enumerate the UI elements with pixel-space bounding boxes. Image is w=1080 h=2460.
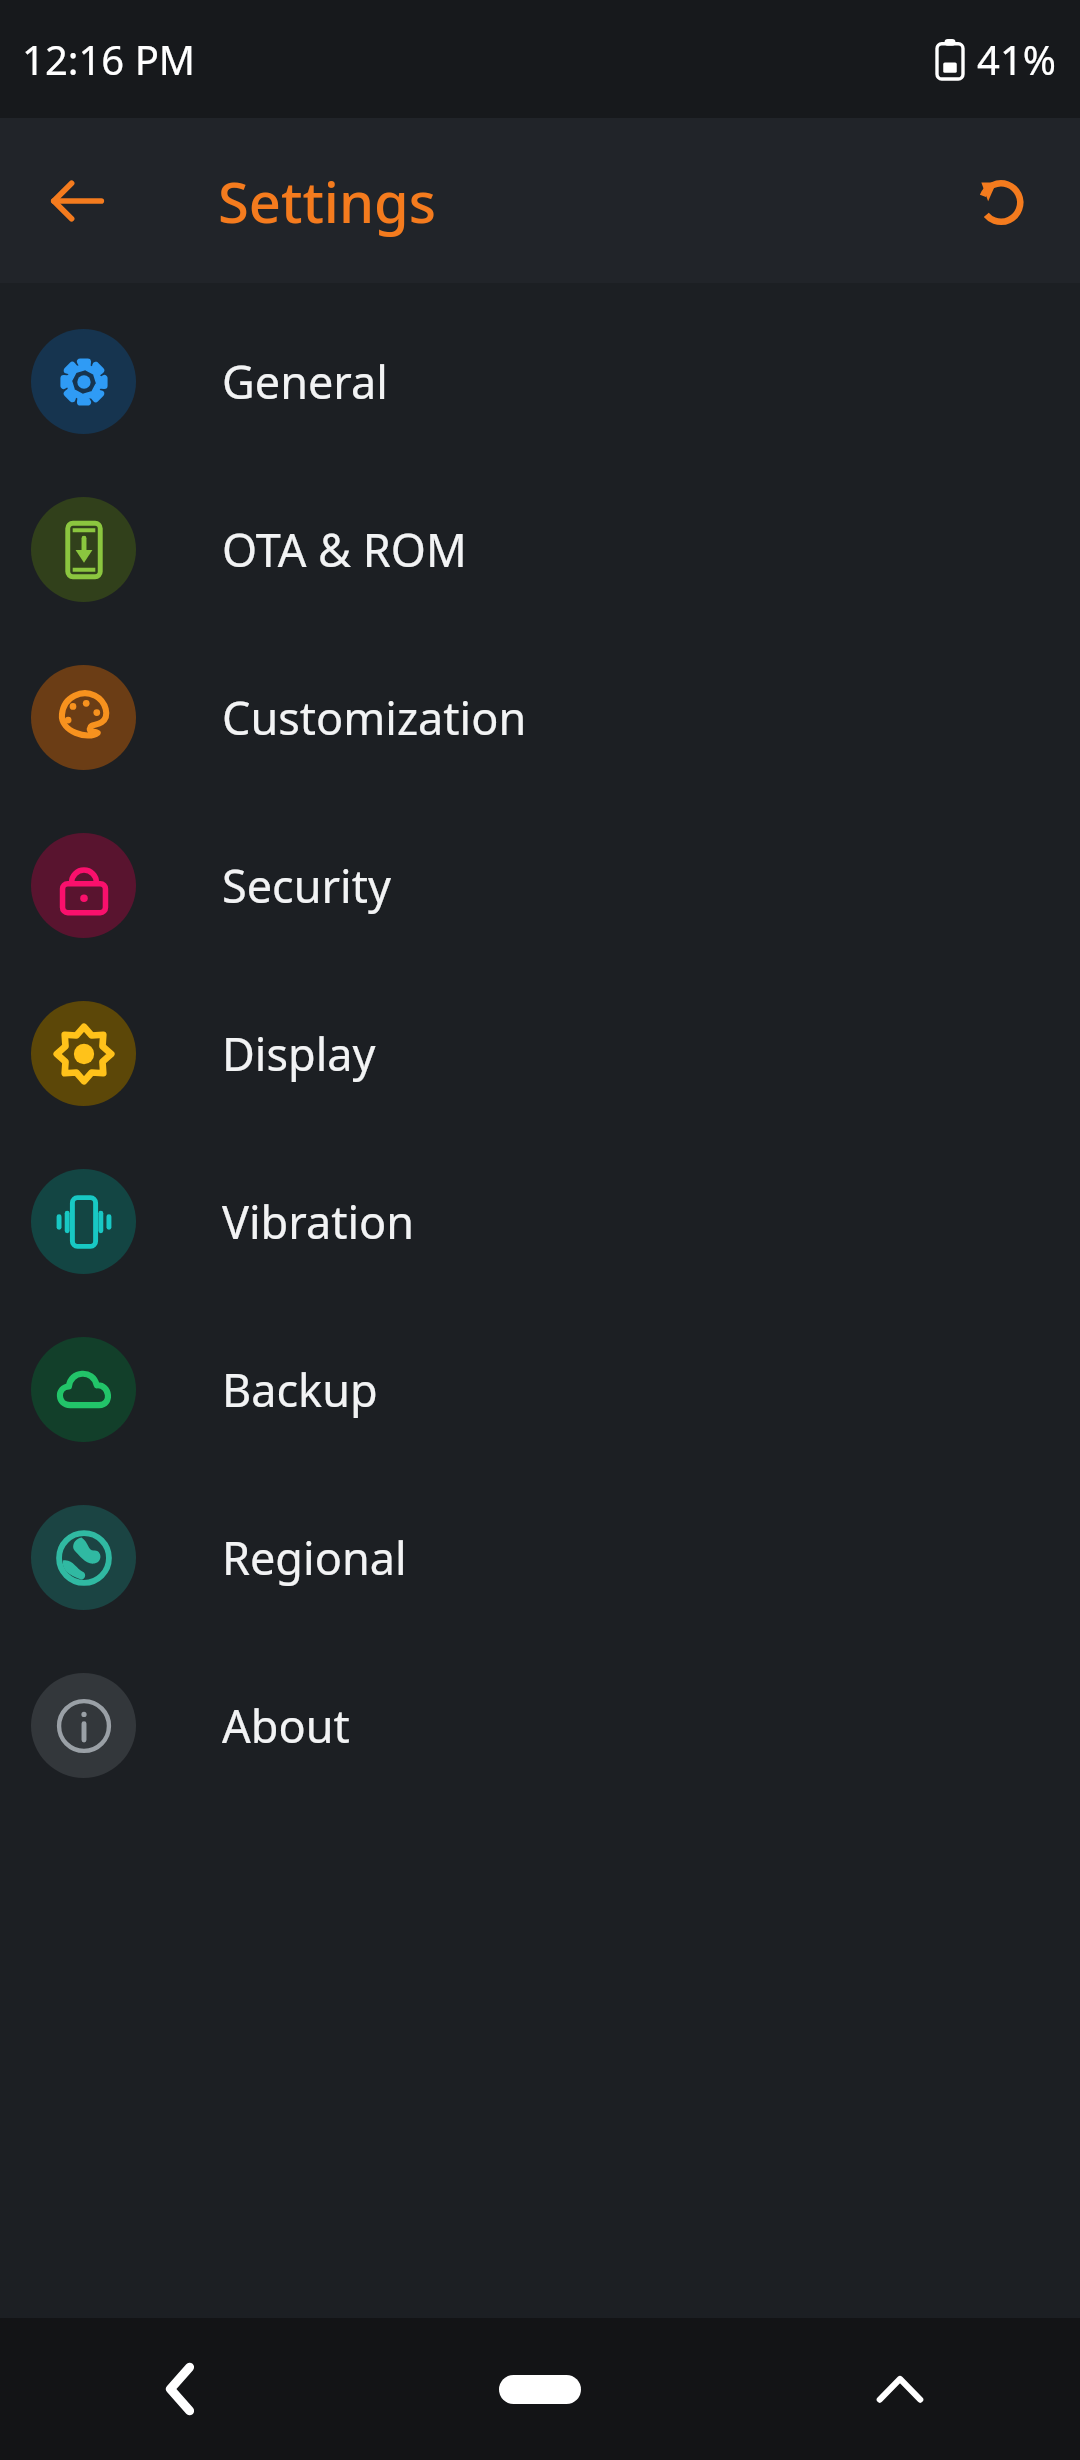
button[interactable]: Vibration: [0, 1137, 1080, 1305]
button[interactable]: Reset: [946, 146, 1056, 256]
staticText: General: [222, 351, 388, 412]
button[interactable]: OTA & ROM: [0, 465, 1080, 633]
button[interactable]: Backup: [0, 1305, 1080, 1473]
button[interactable]: Back: [22, 146, 132, 256]
staticText: 12:16 PM: [22, 32, 196, 86]
staticText: Customization: [222, 687, 527, 748]
button[interactable]: Back: [0, 2318, 360, 2460]
staticText: Regional: [222, 1527, 407, 1588]
staticText: Security: [222, 855, 391, 916]
staticText: Settings: [218, 163, 437, 239]
staticText: About: [222, 1695, 350, 1756]
button[interactable]: Regional: [0, 1473, 1080, 1641]
button[interactable]: Recents: [720, 2318, 1080, 2460]
staticText: 41%: [977, 32, 1056, 86]
button[interactable]: Customization: [0, 633, 1080, 801]
staticText: Backup: [222, 1359, 378, 1420]
staticText: OTA & ROM: [222, 519, 467, 580]
button[interactable]: General: [0, 297, 1080, 465]
button[interactable]: Home: [360, 2318, 720, 2460]
staticText: Display: [222, 1023, 376, 1084]
button[interactable]: Display: [0, 969, 1080, 1137]
button[interactable]: Security: [0, 801, 1080, 969]
button[interactable]: About: [0, 1641, 1080, 1809]
staticText: Vibration: [222, 1191, 415, 1252]
